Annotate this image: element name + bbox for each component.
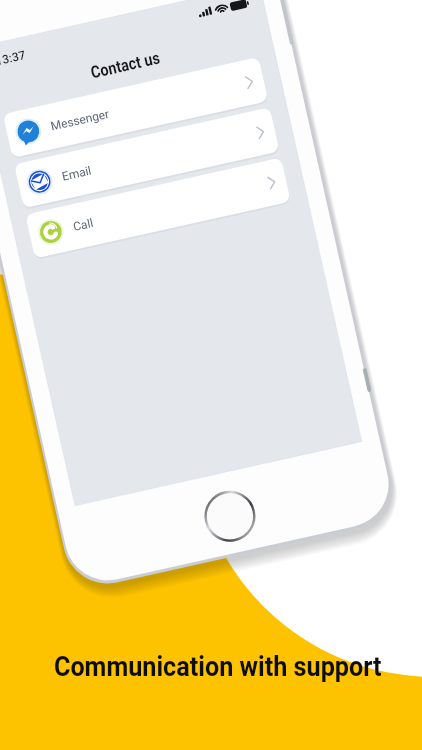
button[interactable]: Contact us screen: [0, 0, 422, 750]
